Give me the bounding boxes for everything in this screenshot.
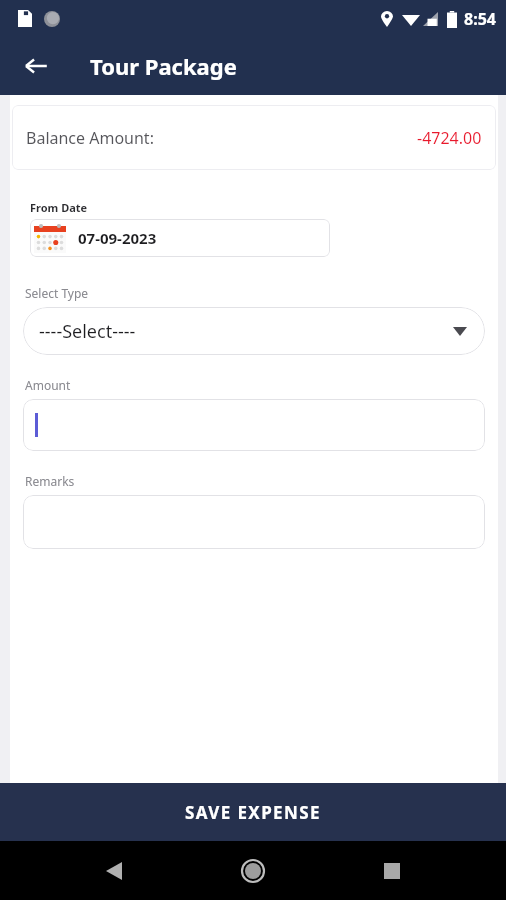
button[interactable]: Balance Amount: — [12, 105, 496, 170]
staticText: From Date — [30, 200, 88, 215]
staticText: Balance Amount: — [26, 127, 154, 149]
staticText: SAVE EXPENSE — [185, 801, 321, 824]
button[interactable]: Recent apps — [376, 855, 408, 887]
staticText: ----Select---- — [39, 319, 136, 344]
staticText: Select Type — [25, 285, 89, 301]
button[interactable]: Back — [14, 44, 58, 88]
button[interactable] — [23, 495, 485, 549]
staticText: Amount — [25, 377, 71, 393]
button[interactable]: SAVE EXPENSE — [0, 783, 506, 841]
staticText: -4724.00 — [417, 127, 482, 149]
staticText: Remarks — [25, 473, 75, 489]
button[interactable]: ----Select---- — [23, 307, 485, 355]
staticText: 8:54 — [464, 8, 496, 30]
button[interactable]: Home — [235, 853, 271, 889]
button[interactable]: 07-09-2023 — [30, 219, 330, 257]
button[interactable]: Back — [98, 855, 130, 887]
staticText: Tour Package — [90, 51, 237, 81]
staticText: 07-09-2023 — [78, 228, 157, 248]
button[interactable] — [23, 399, 485, 451]
